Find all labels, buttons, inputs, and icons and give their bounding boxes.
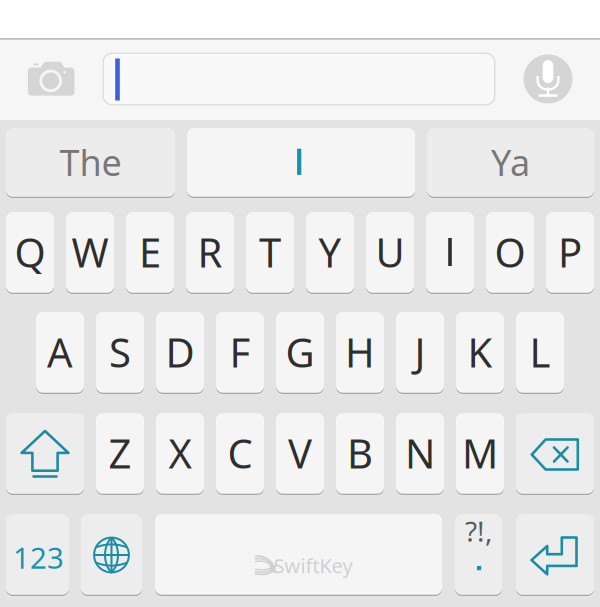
button[interactable]: Z (0, 0, 600, 607)
button[interactable]: The (0, 0, 600, 607)
button[interactable]: C (0, 0, 600, 607)
staticText: S (109, 325, 131, 378)
staticText: E (139, 225, 161, 278)
staticText: O (494, 225, 525, 278)
staticText: F (229, 325, 250, 378)
staticText: D (165, 325, 194, 378)
button[interactable] (0, 0, 600, 607)
button[interactable]: M (0, 0, 600, 607)
staticText: ?!, (465, 512, 493, 549)
button[interactable]: U (0, 0, 600, 607)
button[interactable]: Space (0, 0, 600, 607)
button[interactable]: Shift (0, 0, 600, 607)
button[interactable]: Return (0, 0, 600, 607)
staticText: Z (108, 426, 131, 479)
button[interactable]: N (0, 0, 600, 607)
button[interactable]: K (0, 0, 600, 607)
button[interactable]: Next keyboard (0, 0, 600, 607)
button[interactable]: Camera (0, 0, 600, 607)
button[interactable]: H (0, 0, 600, 607)
button[interactable]: X (0, 0, 600, 607)
staticText: H (345, 325, 375, 378)
button[interactable]: S (0, 0, 600, 607)
staticText: X (168, 426, 191, 479)
button[interactable]: Dictate (0, 0, 600, 607)
staticText: J (414, 325, 425, 378)
button[interactable]: J (0, 0, 600, 607)
staticText: C (227, 426, 252, 479)
button[interactable]: W (0, 0, 600, 607)
staticText: B (347, 426, 373, 479)
staticText: P (558, 225, 582, 278)
staticText: L (529, 325, 550, 378)
button[interactable]: R (0, 0, 600, 607)
staticText: V (288, 426, 312, 479)
button[interactable]: L (0, 0, 600, 607)
staticText: Q (14, 225, 45, 278)
staticText: U (375, 225, 404, 278)
staticText: SwiftKey (273, 552, 352, 579)
button[interactable]: O (0, 0, 600, 607)
staticText: K (467, 325, 492, 378)
staticText: R (197, 225, 222, 278)
staticText: M (462, 426, 498, 479)
button[interactable] (0, 0, 600, 607)
staticText: A (47, 325, 73, 378)
button[interactable]: E (0, 0, 600, 607)
button[interactable]: I (0, 0, 600, 607)
button[interactable]: F (0, 0, 600, 607)
staticText: N (405, 426, 435, 479)
button[interactable]: ?!, (0, 0, 600, 607)
staticText: W (71, 225, 108, 278)
staticText: 123 (13, 538, 64, 577)
button[interactable]: G (0, 0, 600, 607)
button[interactable]: Q (0, 0, 600, 607)
staticText: Ya (491, 138, 530, 186)
staticText: T (259, 225, 281, 278)
button[interactable]: 123 (0, 0, 600, 607)
button[interactable]: Y (0, 0, 600, 607)
button[interactable]: P (0, 0, 600, 607)
staticText: The (59, 138, 121, 186)
button[interactable]: Delete (0, 0, 600, 607)
button[interactable]: Ya (0, 0, 600, 607)
button[interactable]: T (0, 0, 600, 607)
button[interactable]: A (0, 0, 600, 607)
button[interactable]: B (0, 0, 600, 607)
button[interactable]: V (0, 0, 600, 607)
staticText: Y (318, 225, 341, 278)
staticText: G (285, 325, 314, 378)
button[interactable]: D (0, 0, 600, 607)
